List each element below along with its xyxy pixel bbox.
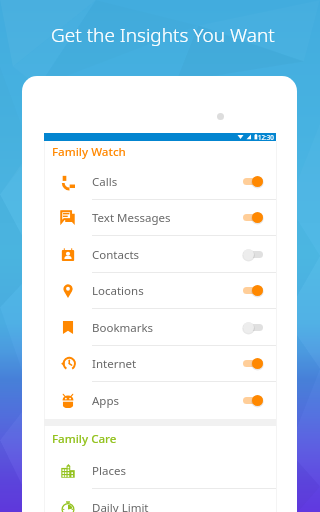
button[interactable]: Calls [44, 163, 276, 200]
button[interactable]: Contacts [44, 236, 276, 273]
button[interactable]: Internet [44, 345, 276, 382]
staticText: Family Watch [52, 144, 126, 160]
staticText: Locations [92, 283, 243, 299]
staticText: Calls [92, 174, 243, 190]
staticText: Internet [92, 356, 243, 372]
staticText: Apps [92, 393, 243, 409]
button[interactable]: Places [44, 452, 276, 489]
button[interactable]: Apps [44, 382, 276, 419]
staticText: Daily Limit [92, 500, 243, 512]
staticText: Places [92, 463, 243, 479]
staticText: Family Care [52, 431, 117, 447]
staticText: Text Messages [92, 210, 243, 226]
button[interactable]: Text Messages [44, 199, 276, 236]
button[interactable]: Daily Limit [44, 489, 276, 512]
staticText: 12:30 [258, 133, 274, 141]
staticText: Bookmarks [92, 320, 243, 336]
button[interactable]: Bookmarks [44, 309, 276, 346]
staticText: Get the Insights You Want [51, 22, 275, 48]
button[interactable]: Locations [44, 272, 276, 309]
staticText: Contacts [92, 247, 243, 263]
